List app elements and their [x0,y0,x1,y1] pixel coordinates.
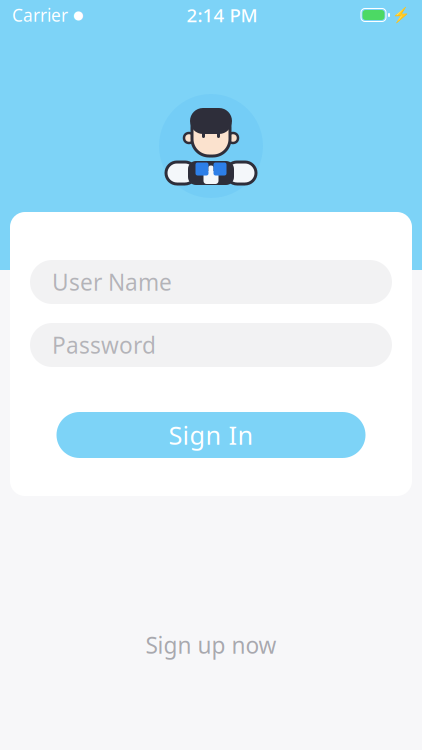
staticText: ⚡ [392,7,410,23]
staticText: Sign In [168,418,253,452]
button[interactable]: Sign up now [121,620,300,670]
staticText: User Name [52,267,172,297]
staticText: 2:14 PM [186,3,257,27]
button[interactable]: Password [30,323,392,367]
staticText: ● [73,8,83,22]
staticText: Password [52,330,156,360]
staticText: Carrier [12,3,68,26]
staticText: Sign up now [145,630,276,660]
button[interactable]: User Name [30,260,392,304]
button[interactable]: Sign In [56,412,365,458]
